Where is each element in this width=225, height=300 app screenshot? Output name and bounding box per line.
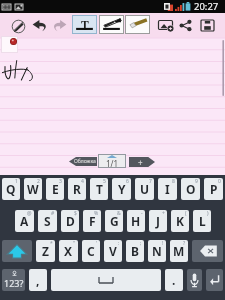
staticText: T	[96, 181, 103, 197]
staticText: 1/1	[106, 158, 119, 169]
button[interactable]: Q	[2, 178, 20, 200]
button[interactable]: Add page	[129, 157, 155, 167]
staticText: 20:27	[194, 0, 219, 13]
button[interactable]: Undo	[32, 19, 48, 32]
staticText: 5	[103, 178, 106, 185]
staticText: !	[162, 240, 164, 247]
button[interactable]: D	[61, 210, 79, 232]
button[interactable]: W	[24, 178, 42, 200]
staticText: J	[156, 213, 160, 229]
staticText: W	[27, 181, 39, 197]
staticText: ,	[36, 272, 40, 288]
staticText: -	[141, 210, 143, 217]
staticText: )	[207, 210, 209, 217]
staticText: 0	[218, 178, 221, 185]
button[interactable]: X	[59, 240, 78, 262]
staticText: 1	[15, 178, 18, 185]
button[interactable]: U	[135, 178, 154, 200]
button[interactable]: Insert image	[158, 19, 174, 32]
button[interactable]: Backspace	[192, 240, 223, 262]
staticText: L	[199, 213, 206, 229]
button[interactable]: M	[170, 240, 188, 262]
staticText: 8	[172, 178, 175, 185]
staticText: +	[162, 210, 165, 217]
staticText: #	[51, 210, 55, 217]
button[interactable]: Symbols	[2, 269, 25, 291]
staticText: *	[50, 240, 53, 247]
staticText: C	[87, 243, 95, 259]
staticText: ;	[140, 240, 142, 247]
button[interactable]: I	[158, 178, 177, 200]
staticText: M	[173, 243, 185, 259]
staticText: O	[186, 181, 196, 197]
staticText: 123?	[4, 277, 24, 289]
staticText: Z	[42, 243, 49, 259]
staticText: 2	[37, 178, 40, 185]
staticText: R	[73, 181, 81, 197]
button[interactable]: P	[204, 178, 223, 200]
button[interactable]: S	[38, 210, 57, 232]
button[interactable]: .	[165, 269, 183, 291]
button[interactable]: C	[82, 240, 100, 262]
button[interactable]: J	[149, 210, 167, 232]
staticText: G	[110, 213, 119, 229]
staticText: $	[74, 210, 77, 217]
button[interactable]: R	[68, 178, 86, 200]
staticText: 4	[81, 178, 84, 185]
button[interactable]: N	[148, 240, 166, 262]
staticText: Обложка	[74, 158, 96, 165]
button[interactable]: Highlighter tool	[125, 15, 150, 34]
staticText: F	[89, 213, 96, 229]
button[interactable]: Обложка	[69, 157, 97, 166]
button[interactable]: E	[46, 178, 64, 200]
staticText: E	[52, 181, 59, 197]
staticText: (	[185, 210, 187, 217]
staticText: B	[131, 243, 139, 259]
staticText: T	[81, 17, 89, 30]
staticText: +	[138, 157, 143, 167]
button[interactable]: Text tool	[72, 15, 97, 34]
button[interactable]: L	[193, 210, 211, 232]
staticText: P	[210, 181, 218, 197]
button[interactable]: F	[83, 210, 101, 232]
staticText: N	[152, 243, 162, 259]
button[interactable]	[51, 269, 161, 291]
button[interactable]: Pen tool	[99, 15, 124, 34]
staticText: &	[117, 210, 121, 217]
button[interactable]: Share	[178, 19, 193, 32]
button[interactable]: Enter	[206, 269, 223, 291]
staticText: A	[20, 213, 29, 229]
button[interactable]: V	[104, 240, 122, 262]
button[interactable]: K	[171, 210, 189, 232]
staticText: Y	[118, 181, 126, 197]
staticText: 6	[126, 178, 129, 185]
button[interactable]: 1/1	[98, 154, 126, 168]
staticText: D	[66, 213, 75, 229]
button[interactable]: Pen disabled	[11, 19, 26, 34]
staticText: Q	[6, 181, 16, 197]
staticText: 7	[149, 178, 152, 185]
staticText: V	[109, 243, 117, 259]
button[interactable]: B	[126, 240, 144, 262]
staticText: H	[131, 213, 141, 229]
button[interactable]: ,	[29, 269, 47, 291]
staticText: '	[96, 240, 98, 247]
button[interactable]: Voice input	[187, 269, 202, 291]
staticText: :	[118, 240, 120, 247]
button[interactable]: Y	[112, 178, 131, 200]
button[interactable]: A	[15, 210, 34, 232]
staticText: ?	[183, 240, 186, 247]
staticText: S	[44, 213, 51, 229]
button[interactable]: Redo	[52, 19, 67, 32]
button[interactable]: T	[90, 178, 108, 200]
staticText: 3	[59, 178, 62, 185]
button[interactable]: Z	[36, 240, 55, 262]
button[interactable]: Shift	[2, 240, 32, 262]
staticText: K	[176, 213, 184, 229]
staticText: I	[165, 181, 170, 197]
button[interactable]: O	[181, 178, 200, 200]
button[interactable]: Save	[200, 19, 215, 32]
staticText: X	[64, 243, 73, 259]
button[interactable]: H	[127, 210, 145, 232]
button[interactable]: G	[105, 210, 123, 232]
